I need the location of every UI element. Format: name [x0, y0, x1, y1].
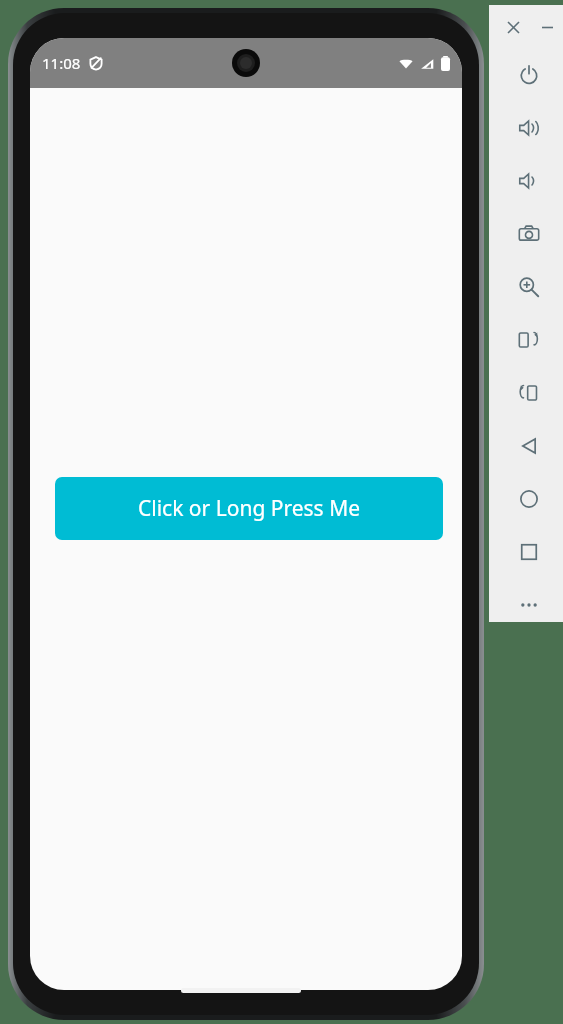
button[interactable]: Overview	[501, 528, 557, 576]
button[interactable]: More	[501, 581, 557, 629]
button[interactable]: Minimize	[533, 13, 561, 41]
button[interactable]: Volume down	[501, 157, 557, 205]
button[interactable]: Zoom	[501, 263, 557, 311]
button[interactable]: Power	[501, 51, 557, 99]
button[interactable]: Close	[499, 13, 527, 41]
staticText: 11:08	[42, 53, 81, 73]
button[interactable]: Volume up	[501, 104, 557, 152]
button[interactable]: Home	[501, 475, 557, 523]
button[interactable]: Take screenshot	[501, 210, 557, 258]
button[interactable]: Rotate left	[501, 316, 557, 364]
button[interactable]: Back	[501, 422, 557, 470]
button[interactable]: Click or Long Press Me	[55, 477, 443, 540]
button[interactable]: Rotate right	[501, 369, 557, 417]
staticText: Click or Long Press Me	[138, 494, 361, 523]
